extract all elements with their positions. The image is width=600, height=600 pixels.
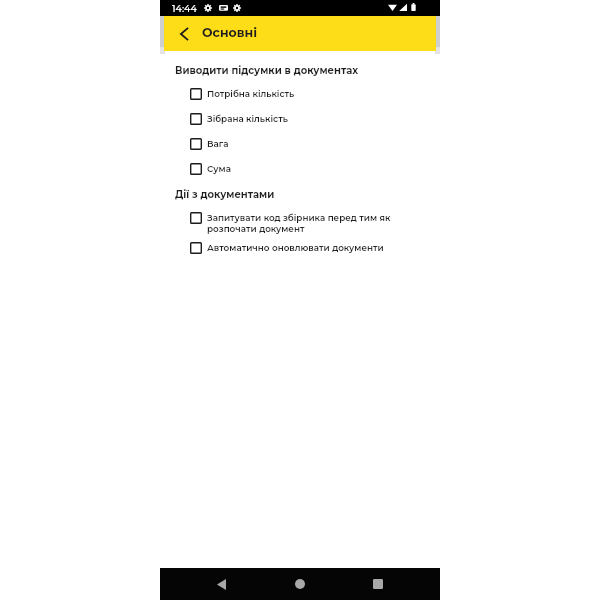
button[interactable]: Потрібна кількість — [160, 86, 440, 105]
button[interactable]: Сума — [160, 161, 440, 180]
staticText: Автоматично оновлювати документи — [207, 242, 384, 253]
staticText: Зібрана кількість — [207, 113, 288, 124]
button[interactable]: Back — [170, 16, 198, 51]
button[interactable]: Home — [284, 568, 316, 600]
staticText: Сума — [207, 163, 231, 174]
button[interactable]: Вага — [160, 136, 440, 155]
staticText: Дії з документами — [175, 188, 275, 200]
button[interactable]: Запитувати код збірника перед тим як роз… — [160, 210, 440, 239]
staticText: 14:44 — [172, 3, 197, 15]
button[interactable]: Recent apps — [362, 568, 394, 600]
button[interactable]: Автоматично оновлювати документи — [160, 240, 440, 259]
staticText: Вага — [207, 138, 229, 149]
button[interactable]: Зібрана кількість — [160, 111, 440, 130]
staticText: Виводити підсумки в документах — [175, 64, 359, 76]
button[interactable]: Back — [205, 568, 237, 600]
staticText: Потрібна кількість — [207, 88, 295, 99]
staticText: Основні — [202, 25, 258, 40]
staticText: Запитувати код збірника перед тим як роз… — [207, 212, 418, 234]
